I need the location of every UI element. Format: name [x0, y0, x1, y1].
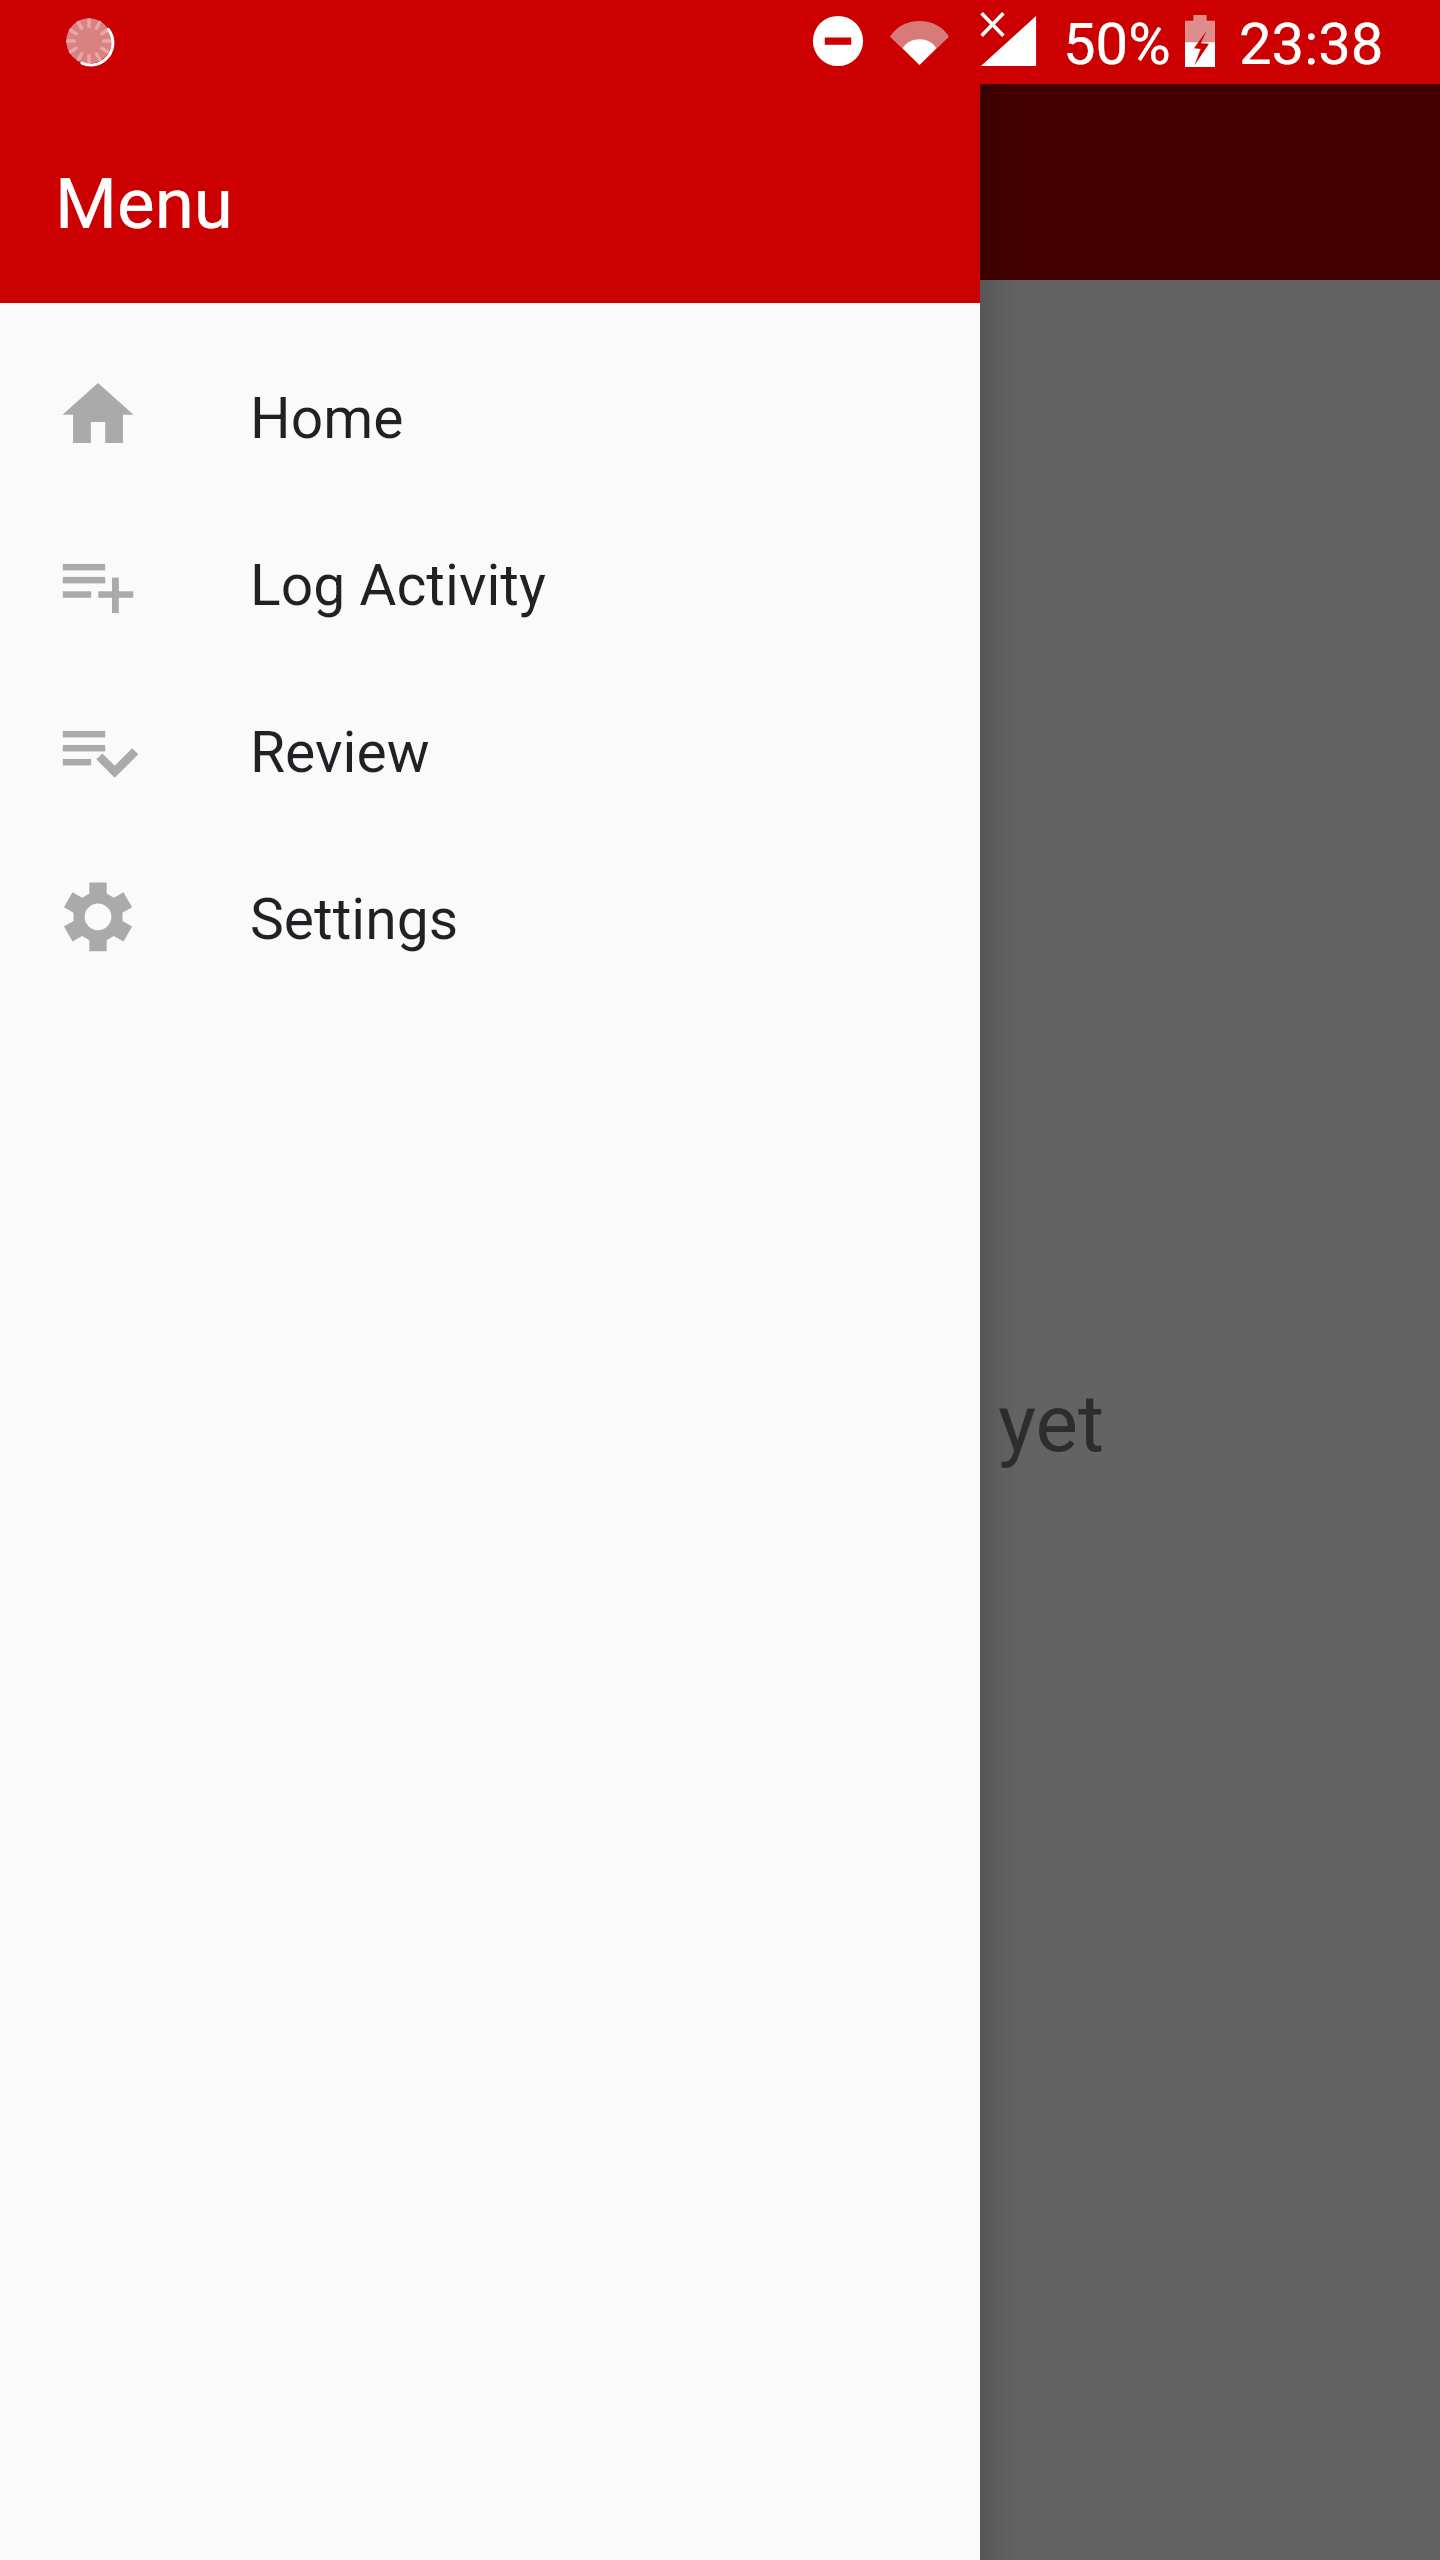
button[interactable]: Settings [0, 830, 980, 997]
staticText: Menu [55, 162, 233, 245]
button[interactable]: Review [0, 663, 980, 830]
staticText: 23:38 [1239, 10, 1384, 78]
button[interactable]: Log Activity [0, 496, 980, 663]
other: Mobile signal [975, 10, 1041, 70]
other: Wi-Fi [890, 18, 949, 65]
other: Battery charging 50 percent [1185, 15, 1215, 67]
staticText: Review [250, 719, 430, 786]
other: Notification [66, 18, 112, 64]
staticText: Log Activity [250, 552, 546, 619]
button[interactable]: Home [0, 329, 980, 496]
staticText: Settings [250, 886, 459, 953]
other: Do not disturb [811, 14, 865, 68]
staticText: 50% [1063, 10, 1171, 78]
staticText: Home [250, 385, 404, 452]
staticText: No activities logged yet [275, 1377, 1105, 1471]
button[interactable]: Close navigation drawer [980, 0, 1440, 2560]
